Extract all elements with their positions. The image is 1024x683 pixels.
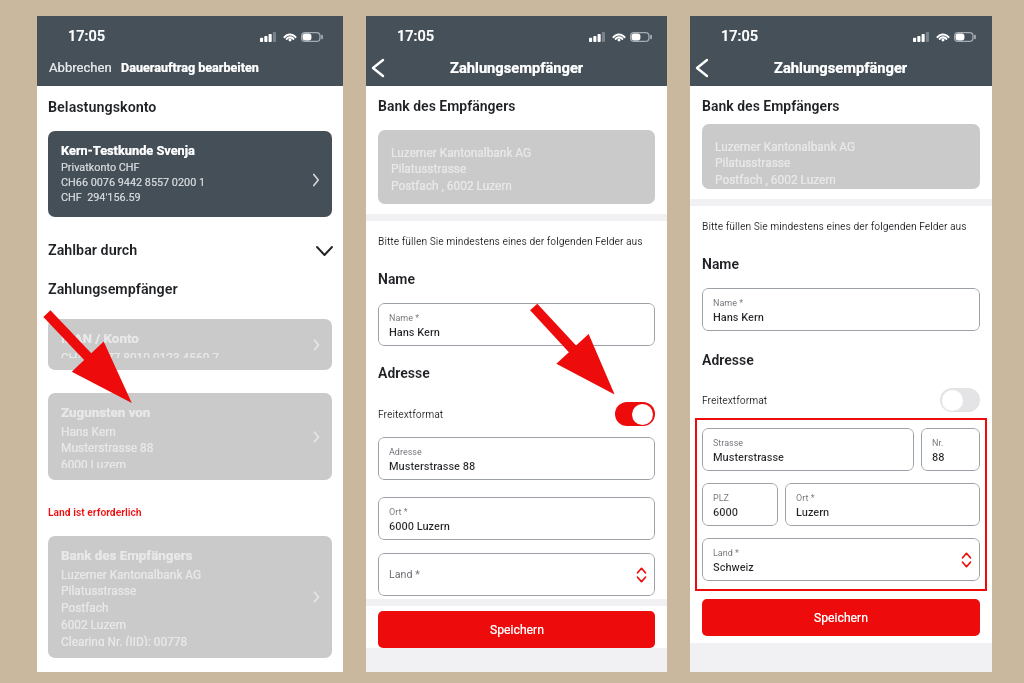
staticText: Speichern — [814, 611, 868, 625]
staticText: Bank des Empfängers — [378, 98, 516, 114]
button[interactable]: Speichern — [378, 611, 655, 648]
staticText: Kern-Testkunde Svenja — [61, 143, 195, 158]
staticText: Luzern — [796, 506, 830, 519]
staticText: IBAN / Konto — [61, 331, 139, 347]
button[interactable]: Land * — [702, 538, 980, 581]
button[interactable]: Strasse — [702, 428, 914, 471]
button[interactable]: Land * — [378, 553, 655, 596]
staticText: Nr. — [932, 438, 944, 449]
staticText: Abbrechen — [49, 60, 112, 75]
button[interactable]: Speichern — [702, 599, 980, 636]
button[interactable]: IBAN / Konto — [48, 319, 332, 370]
staticText: 6000 — [713, 506, 739, 519]
staticText: 6000 Luzern — [389, 520, 450, 533]
staticText: 17:05 — [68, 27, 106, 44]
staticText: Hans Kern — [713, 311, 764, 324]
staticText: Bank des Empfängers — [702, 98, 840, 114]
button[interactable]: Luzerner Kantonalbank AG Pilatusstrasse … — [702, 124, 980, 189]
staticText: Land ist erforderlich — [48, 506, 142, 518]
staticText: Zahlungsempfänger — [774, 59, 908, 76]
staticText: Speichern — [490, 623, 544, 637]
staticText: Name — [378, 271, 416, 287]
staticText: Zugunsten von — [61, 405, 151, 421]
staticText: Schweiz — [713, 561, 754, 574]
staticText: Adresse — [702, 352, 754, 368]
staticText: Hans Kern — [389, 326, 440, 339]
staticText: Freitextformat — [702, 394, 768, 406]
button[interactable]: Abbrechen — [47, 60, 114, 75]
staticText: Adresse — [389, 447, 422, 458]
staticText: Zahlungsempfänger — [48, 281, 178, 298]
button[interactable]: Zugunsten von — [48, 393, 332, 480]
button[interactable]: Nr. — [921, 428, 980, 471]
staticText: Name * — [389, 313, 420, 324]
staticText: Hans Kern Musterstrasse 88 6000 Luzern — [61, 425, 154, 468]
button[interactable]: Freitextformat — [615, 402, 655, 426]
button[interactable]: Name * — [702, 288, 980, 331]
staticText: Dauerauftrag bearbeiten — [121, 60, 259, 75]
staticText: Musterstrasse 88 — [389, 460, 476, 473]
button[interactable]: Ort * — [785, 483, 980, 526]
button[interactable]: Name * — [378, 303, 655, 346]
staticText: 88 — [932, 451, 945, 464]
staticText: Name * — [713, 298, 744, 309]
staticText: Zahlungsempfänger — [450, 59, 584, 76]
staticText: Land * — [389, 568, 420, 581]
button[interactable]: Kern-Testkunde Svenja — [48, 131, 332, 217]
staticText: Ort * — [389, 507, 408, 518]
staticText: Land * — [713, 548, 739, 559]
staticText: Luzerner Kantonalbank AG Pilatusstrasse … — [391, 146, 532, 193]
button[interactable]: PLZ — [702, 483, 778, 526]
staticText: Luzerner Kantonalbank AG Pilatusstrasse … — [715, 140, 856, 187]
staticText: Zahlbar durch — [48, 242, 138, 259]
staticText: Bank des Empfängers — [61, 548, 193, 564]
staticText: Bitte füllen Sie mindestens eines der fo… — [702, 220, 967, 232]
staticText: 17:05 — [721, 27, 759, 44]
staticText: Adresse — [378, 365, 430, 381]
staticText: Belastungskonto — [48, 99, 157, 116]
button[interactable]: Luzerner Kantonalbank AG Pilatusstrasse … — [378, 130, 655, 204]
button[interactable]: Back — [367, 54, 389, 82]
button[interactable]: Bank des Empfängers — [48, 536, 332, 658]
staticText: Name — [702, 256, 740, 272]
staticText: Bitte füllen Sie mindestens eines der fo… — [378, 235, 643, 247]
button[interactable]: Back — [691, 54, 713, 82]
button[interactable]: Freitextformat — [940, 388, 980, 412]
staticText: Musterstrasse — [713, 451, 785, 464]
button[interactable]: Zahlbar durch — [48, 242, 332, 259]
staticText: PLZ — [713, 493, 729, 504]
button[interactable]: Adresse — [378, 437, 655, 480]
staticText: Strasse — [713, 438, 744, 449]
staticText: 17:05 — [397, 27, 435, 44]
staticText: Freitextformat — [378, 408, 444, 420]
staticText: Ort * — [796, 493, 815, 504]
button[interactable]: Ort * — [378, 497, 655, 540]
staticText: Luzerner Kantonalbank AG Pilatusstrasse … — [61, 568, 202, 646]
staticText: Privatkonto CHF CH66 0076 9442 8557 0200… — [61, 161, 206, 204]
staticText: CH44 0077 8010 0123 4560 7 — [61, 351, 219, 358]
